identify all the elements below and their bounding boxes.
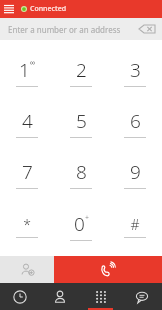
button[interactable]: Recents bbox=[0, 283, 40, 310]
button[interactable]: Menu bbox=[0, 0, 18, 18]
button[interactable]: Messages bbox=[121, 283, 162, 310]
button[interactable]: 9 bbox=[108, 148, 162, 200]
button[interactable]: # bbox=[108, 200, 162, 252]
staticText: ∞ bbox=[30, 59, 35, 67]
button[interactable]: 5 bbox=[54, 97, 108, 148]
button[interactable]: 0 bbox=[54, 200, 108, 252]
staticText: Enter a number or an address bbox=[8, 24, 121, 35]
button[interactable]: Backspace bbox=[136, 20, 158, 38]
staticText: 1 bbox=[19, 57, 30, 83]
staticText: 5 bbox=[76, 108, 87, 134]
button[interactable]: Enter a number or an address bbox=[0, 18, 162, 40]
button[interactable]: 2 bbox=[54, 46, 108, 97]
button[interactable]: 1 bbox=[0, 46, 54, 97]
button[interactable]: Contacts bbox=[40, 283, 80, 310]
button[interactable]: Add contact bbox=[0, 256, 54, 283]
staticText: # bbox=[130, 215, 140, 234]
staticText: + bbox=[85, 213, 89, 223]
staticText: 2 bbox=[76, 57, 87, 83]
button[interactable]: 4 bbox=[0, 97, 54, 148]
button[interactable]: 7 bbox=[0, 148, 54, 200]
staticText: 6 bbox=[130, 108, 141, 134]
staticText: 8 bbox=[76, 159, 87, 185]
staticText: 0 bbox=[74, 211, 85, 237]
staticText: 4 bbox=[22, 108, 33, 134]
staticText: 9 bbox=[130, 159, 141, 185]
button[interactable]: 6 bbox=[108, 97, 162, 148]
staticText: 3 bbox=[130, 57, 141, 83]
button[interactable]: * bbox=[0, 200, 54, 252]
button[interactable]: Keypad bbox=[80, 283, 121, 310]
button[interactable]: Call bbox=[54, 256, 162, 283]
staticText: 7 bbox=[22, 159, 33, 185]
button[interactable]: 3 bbox=[108, 46, 162, 97]
button[interactable]: 8 bbox=[54, 148, 108, 200]
staticText: Connected bbox=[30, 4, 66, 14]
staticText: * bbox=[23, 215, 31, 234]
